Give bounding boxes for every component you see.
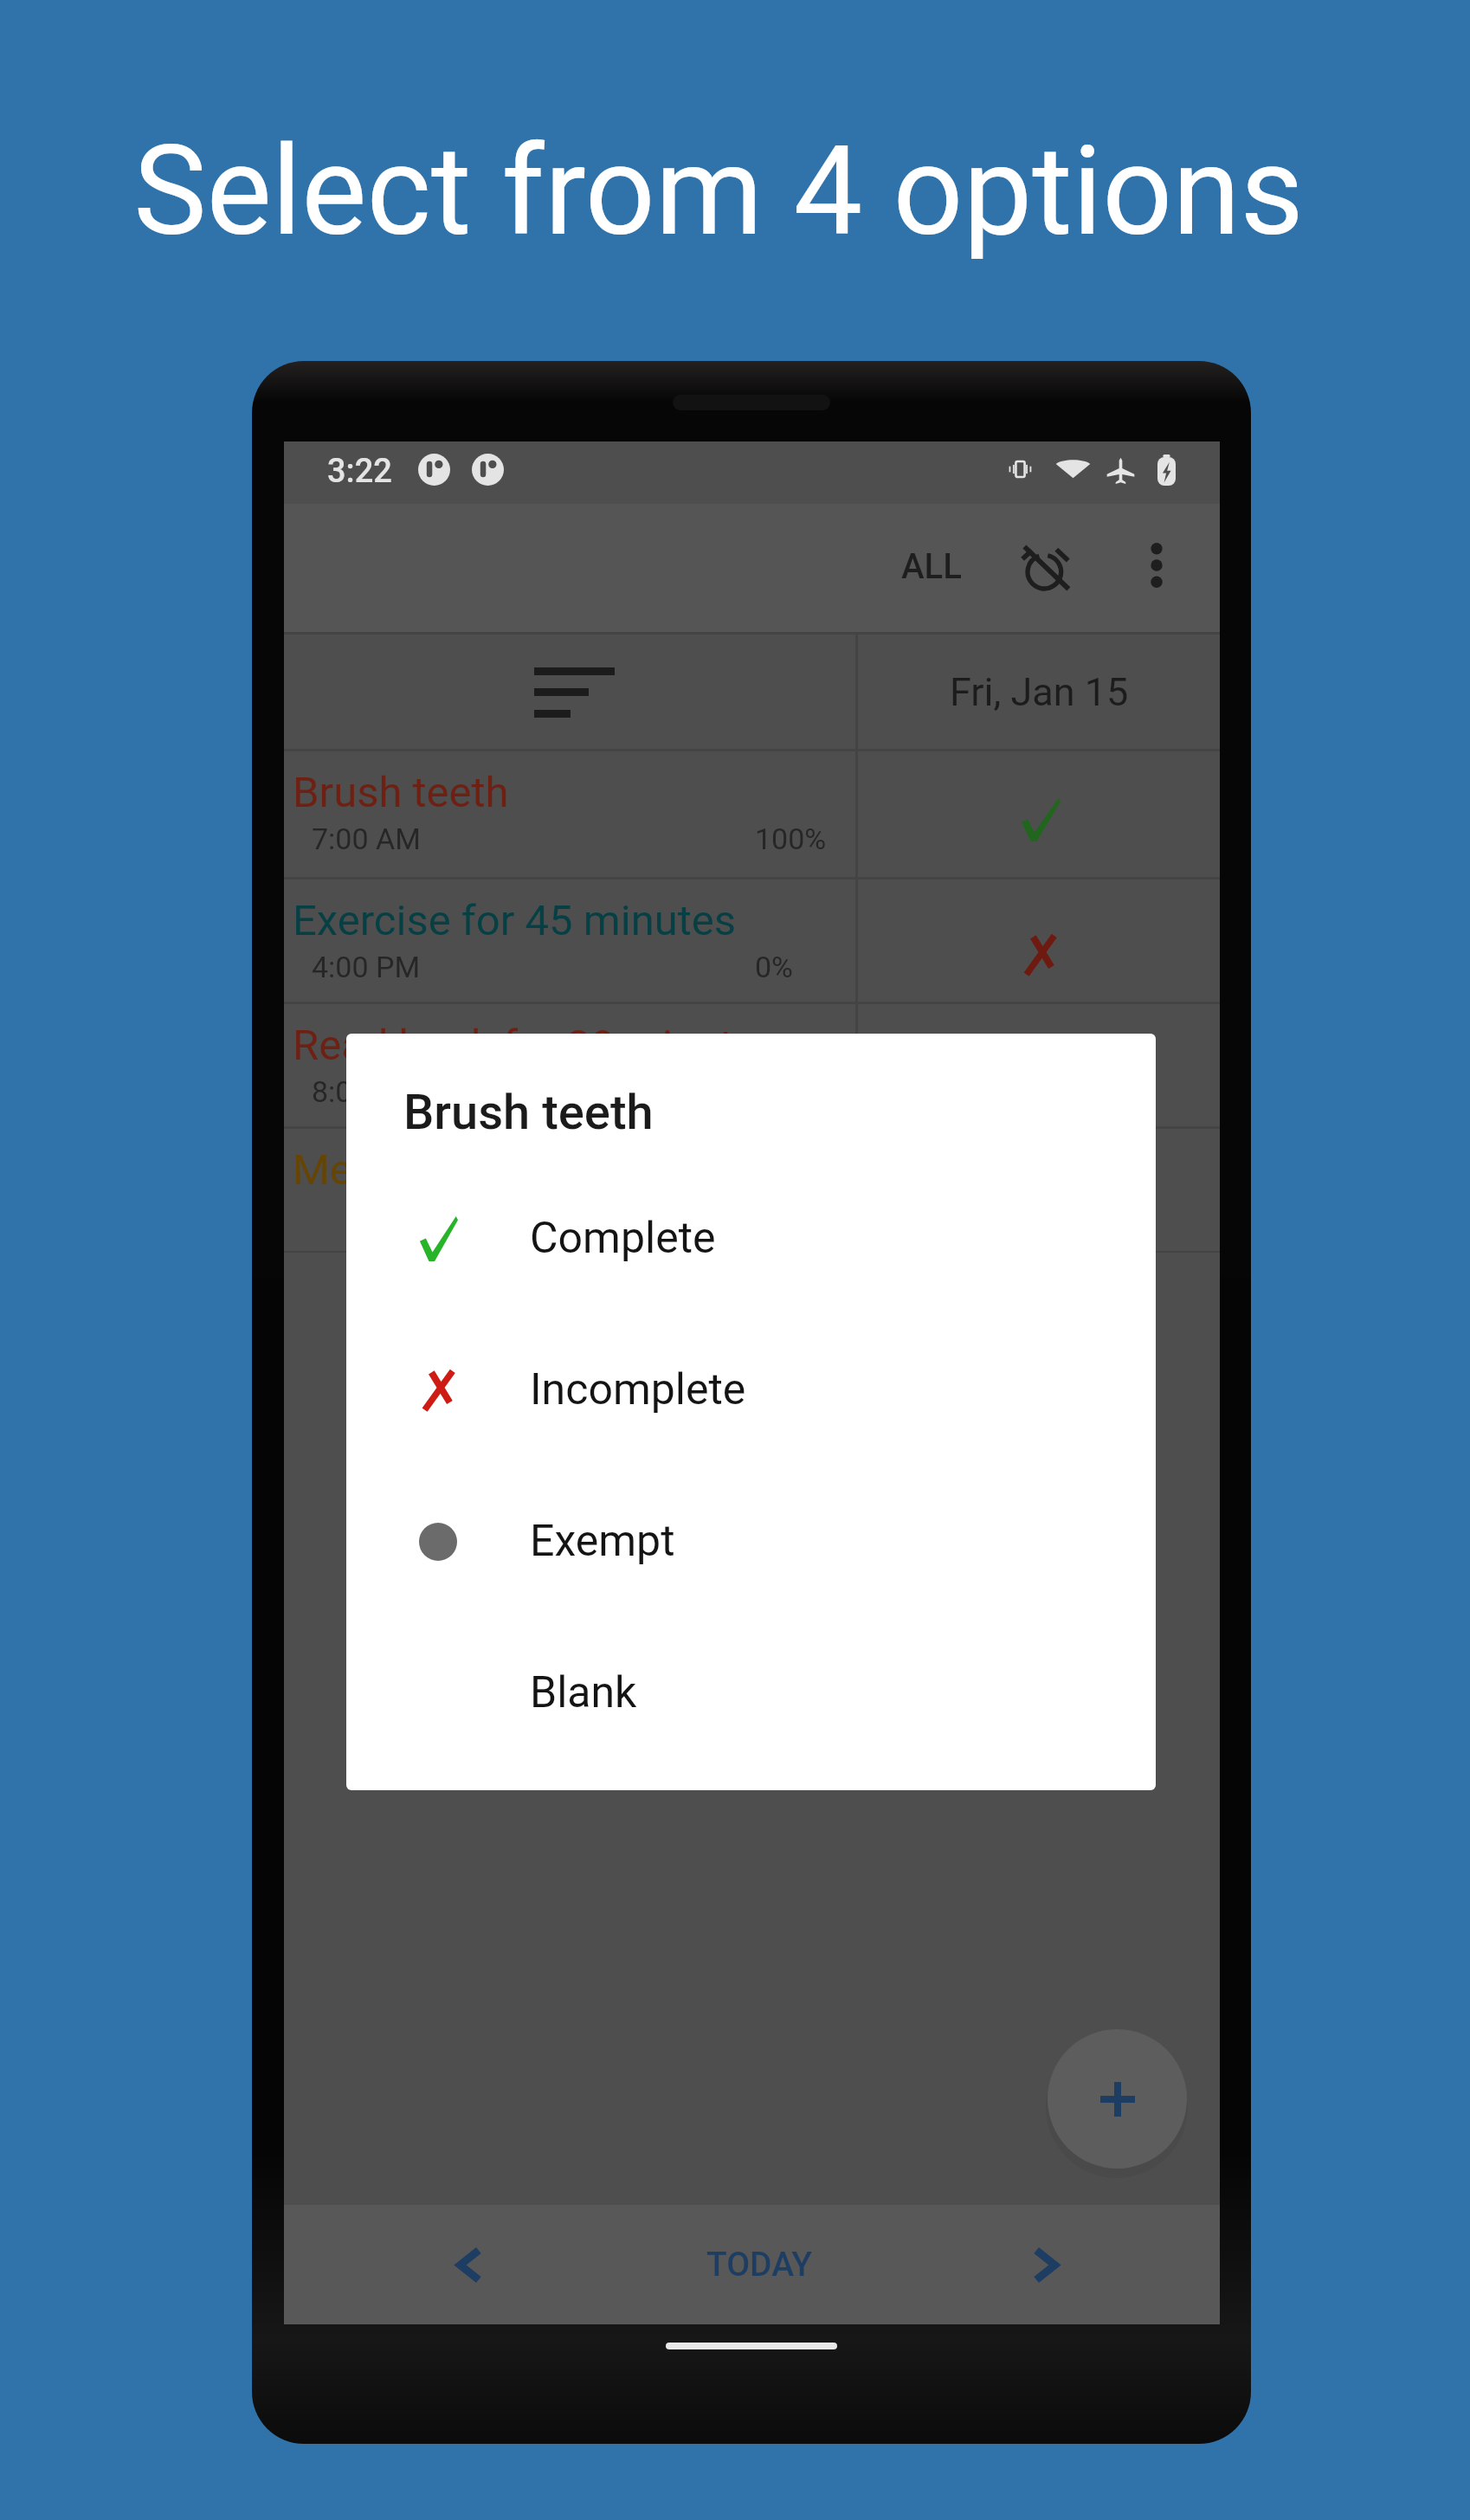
button[interactable]: Exercise for 45 minutes	[284, 880, 1220, 1002]
button[interactable]: More options	[1112, 520, 1202, 610]
staticText: 100%	[755, 822, 827, 856]
button[interactable]: Brush teeth	[284, 751, 1220, 877]
staticText: 7:00 AM	[312, 822, 421, 856]
staticText: Blank	[530, 1667, 637, 1718]
staticText: Exercise for 45 minutes	[293, 896, 737, 945]
button[interactable]: Incomplete	[346, 1314, 1156, 1466]
staticText: Read book for 30 minutes	[293, 1021, 778, 1070]
button[interactable]: ALL	[887, 521, 976, 611]
staticText: 0%	[755, 950, 794, 984]
staticText: Fri, Jan 15	[950, 669, 1129, 715]
button[interactable]: Fri, Jan 15	[858, 635, 1220, 749]
button[interactable]: Blank	[346, 1617, 1156, 1769]
staticText: TODAY	[706, 2245, 813, 2285]
staticText: Select from 4 options	[0, 119, 1454, 263]
button[interactable]: Complete	[346, 1163, 1156, 1314]
staticText: Brush teeth	[403, 1084, 654, 1141]
staticText: Brush teeth	[293, 768, 509, 817]
staticText: 4:00 PM	[312, 950, 421, 984]
button[interactable]: Next day	[977, 2205, 1115, 2324]
staticText: Exempt	[530, 1516, 675, 1567]
staticText: Meditate	[293, 1145, 461, 1195]
staticText: 3:22	[327, 452, 392, 491]
button[interactable]: TODAY	[664, 2205, 854, 2324]
staticText: Incomplete	[530, 1364, 746, 1415]
button[interactable]: Add habit	[1048, 2029, 1187, 2169]
button[interactable]: Exempt	[346, 1466, 1156, 1617]
staticText: 8:00 PM	[312, 1074, 421, 1109]
button[interactable]: Sort habits	[284, 635, 855, 749]
button[interactable]: Toggle reminders	[1001, 520, 1091, 610]
staticText: Complete	[530, 1213, 716, 1264]
button[interactable]: Read book for 30 minutes	[284, 1004, 1220, 1126]
button[interactable]: Meditate	[284, 1129, 1220, 1251]
staticText: ALL	[901, 546, 962, 587]
button[interactable]: Previous day	[399, 2205, 538, 2324]
